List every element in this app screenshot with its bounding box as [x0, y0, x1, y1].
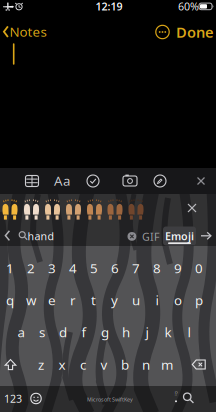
- button[interactable]: m: [161, 356, 173, 373]
- staticText: Microsoft SwiftKey: [87, 396, 133, 403]
- button[interactable]: Raising hands emoji: [0, 195, 20, 221]
- staticText: Emoji: [165, 229, 194, 243]
- button[interactable]: w: [26, 291, 36, 309]
- button[interactable]: Raising hands emoji medium-dark skin ton…: [105, 195, 125, 221]
- staticText: t: [91, 291, 96, 309]
- button[interactable]: k: [164, 323, 171, 341]
- button[interactable]: Back to Notes: [0, 17, 56, 47]
- staticText: r: [70, 291, 76, 309]
- button[interactable]: 1: [6, 259, 14, 277]
- staticText: d: [59, 323, 67, 341]
- button[interactable]: s: [39, 323, 45, 341]
- staticText: Notes: [9, 23, 46, 40]
- button[interactable]: 5: [90, 259, 98, 277]
- button[interactable]: Raising hands emoji medium skin tone: [63, 195, 83, 221]
- button[interactable]: Camera: [123, 175, 137, 187]
- staticText: 3: [48, 259, 56, 277]
- staticText: o: [174, 291, 182, 309]
- staticText: b: [121, 356, 129, 373]
- staticText: 9: [174, 259, 182, 277]
- staticText: 4: [69, 259, 77, 277]
- staticText: j: [145, 323, 148, 341]
- staticText: i: [155, 291, 158, 309]
- button[interactable]: a: [17, 323, 24, 341]
- button[interactable]: Dismiss toolbar: [197, 177, 204, 184]
- button[interactable]: 9: [174, 259, 182, 277]
- button[interactable]: z: [38, 356, 44, 373]
- staticText: z: [38, 356, 44, 373]
- button[interactable]: Close emoji suggestions: [188, 204, 196, 212]
- button[interactable]: 3: [48, 259, 56, 277]
- button[interactable]: Text format: [54, 172, 70, 189]
- button[interactable]: t: [91, 291, 96, 309]
- staticText: a: [17, 323, 24, 341]
- button[interactable]: l: [187, 323, 190, 341]
- button[interactable]: 4: [69, 259, 77, 277]
- staticText: GIF: [142, 229, 160, 244]
- staticText: 1: [6, 259, 14, 277]
- button[interactable]: Emoji keyboard: [30, 393, 41, 404]
- button[interactable]: 8: [153, 259, 161, 277]
- button[interactable]: b: [121, 356, 129, 373]
- staticText: e: [48, 291, 56, 309]
- staticText: hand: [27, 229, 54, 243]
- staticText: f: [81, 323, 86, 341]
- staticText: 8: [153, 259, 161, 277]
- button[interactable]: Delete: [192, 359, 206, 369]
- button[interactable]: r: [70, 291, 76, 309]
- button[interactable]: y: [111, 291, 118, 309]
- button[interactable]: d: [59, 323, 67, 341]
- button[interactable]: c: [80, 356, 86, 373]
- button[interactable]: Clear search: [127, 232, 136, 241]
- staticText: Aa: [54, 172, 70, 189]
- staticText: m: [161, 356, 173, 373]
- button[interactable]: 2: [27, 259, 35, 277]
- button[interactable]: e: [48, 291, 56, 309]
- staticText: c: [80, 356, 86, 373]
- button[interactable]: u: [132, 291, 140, 309]
- button[interactable]: Emoji results: [163, 226, 196, 245]
- staticText: q: [6, 291, 14, 309]
- staticText: 6: [111, 259, 119, 277]
- button[interactable]: Raising hands emoji medium-light skin to…: [42, 195, 62, 221]
- button[interactable]: n: [142, 356, 150, 373]
- staticText: g: [101, 323, 109, 341]
- button[interactable]: Raising hands emoji dark skin tone: [126, 195, 146, 221]
- button[interactable]: 7: [132, 259, 140, 277]
- button[interactable]: Markup: [153, 174, 166, 187]
- button[interactable]: Period: [170, 391, 181, 403]
- button[interactable]: g: [101, 323, 109, 341]
- button[interactable]: i: [155, 291, 158, 309]
- staticText: v: [100, 356, 107, 373]
- button[interactable]: o: [174, 291, 182, 309]
- button[interactable]: Raising hands emoji medium skin tone: [84, 195, 104, 221]
- button[interactable]: h: [122, 323, 130, 341]
- staticText: 7: [132, 259, 140, 277]
- staticText: h: [122, 323, 130, 341]
- button[interactable]: Done: [176, 22, 214, 42]
- button[interactable]: p: [195, 291, 203, 309]
- staticText: n: [142, 356, 150, 373]
- button[interactable]: x: [58, 356, 65, 373]
- button[interactable]: Next results: [201, 232, 211, 240]
- button[interactable]: j: [145, 323, 148, 341]
- button[interactable]: Raising hands emoji light skin tone: [21, 195, 41, 221]
- staticText: w: [26, 291, 36, 309]
- button[interactable]: q: [6, 291, 14, 309]
- button[interactable]: f: [81, 323, 86, 341]
- button[interactable]: Checklist: [86, 174, 99, 187]
- button[interactable]: Search: [183, 393, 194, 403]
- button[interactable]: 0: [195, 259, 203, 277]
- button[interactable]: More options: [154, 24, 170, 40]
- button[interactable]: Space: [87, 396, 133, 403]
- button[interactable]: 6: [111, 259, 119, 277]
- button[interactable]: Back: [5, 230, 11, 241]
- staticText: l: [187, 323, 190, 341]
- staticText: 2: [27, 259, 35, 277]
- button[interactable]: GIF: [142, 229, 160, 244]
- button[interactable]: Insert table: [21, 171, 43, 191]
- staticText: p: [195, 291, 203, 309]
- button[interactable]: v: [100, 356, 107, 373]
- button[interactable]: 123: [4, 391, 22, 406]
- button[interactable]: Shift: [5, 359, 16, 370]
